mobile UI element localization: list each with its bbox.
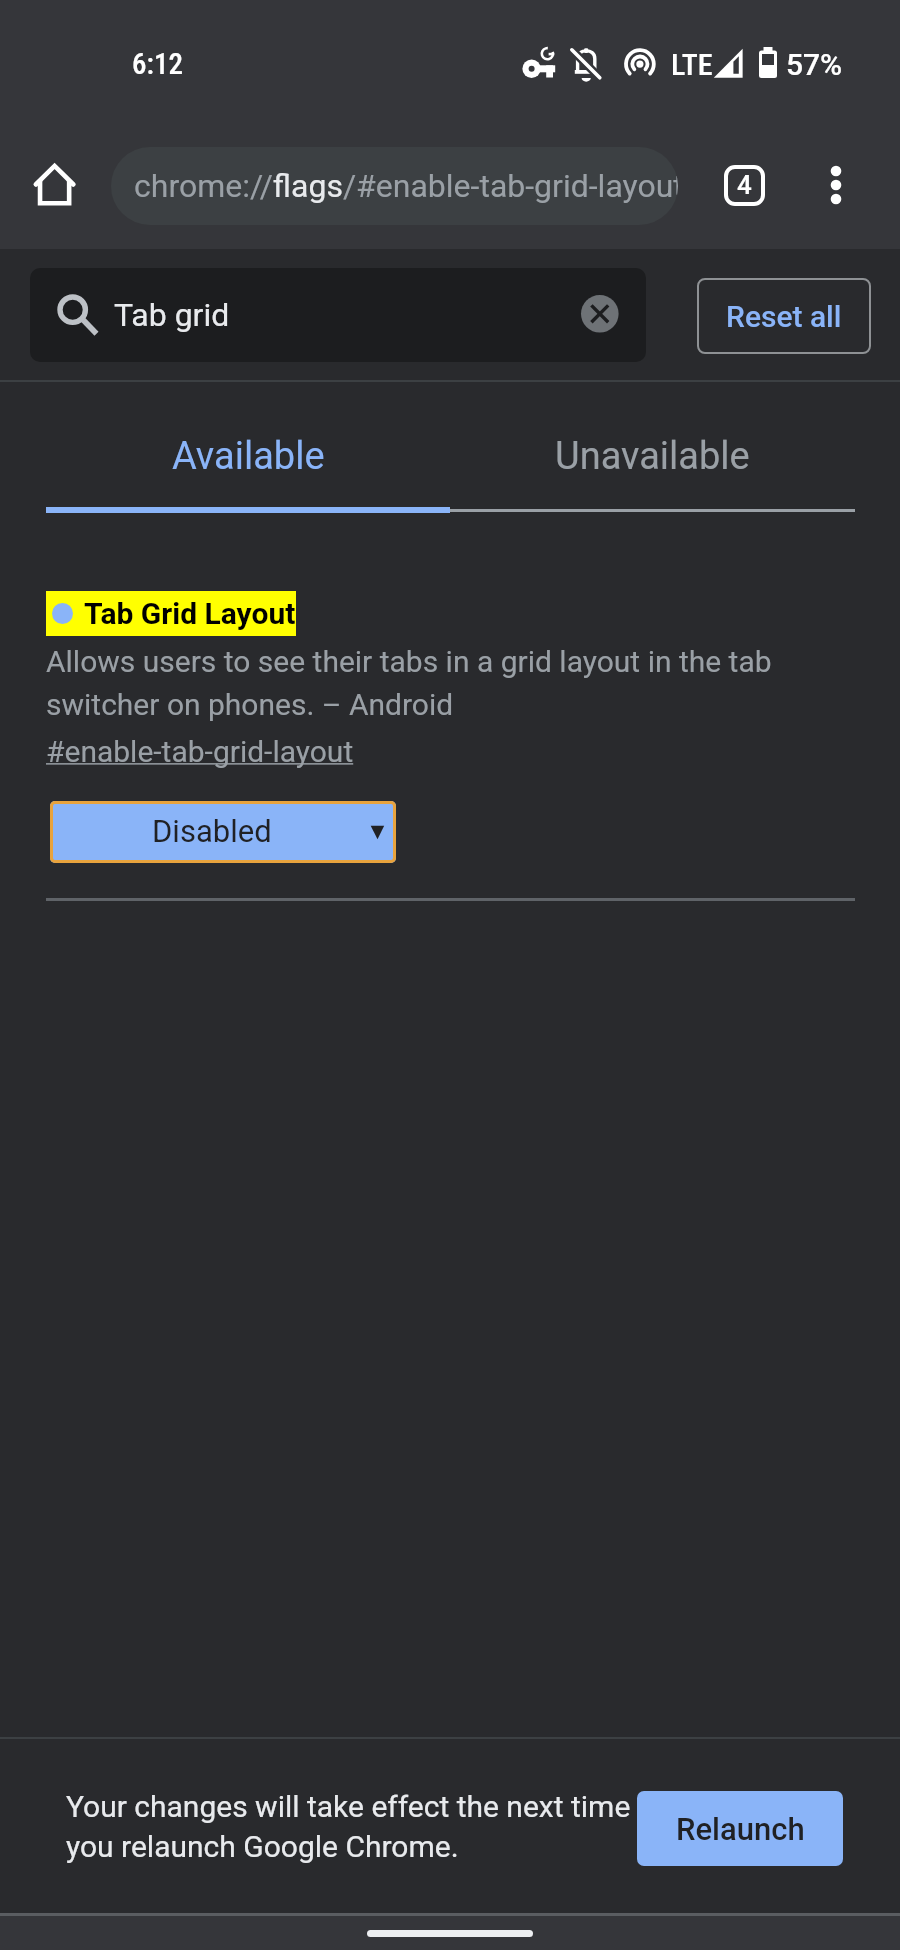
staticText: 57% xyxy=(786,47,843,82)
button[interactable]: More options xyxy=(806,155,866,215)
button[interactable]: Relaunch xyxy=(637,1791,843,1866)
button[interactable]: Disabled xyxy=(50,801,396,863)
staticText: Allows users to see their tabs in a grid… xyxy=(46,644,772,722)
staticText: 4 xyxy=(737,170,752,200)
button[interactable]: Home xyxy=(20,150,89,219)
button[interactable]: Tab grid xyxy=(30,268,646,362)
staticText: chrome://flags/#enable-tab-grid-layout xyxy=(134,167,678,205)
staticText: 6:12 xyxy=(132,47,183,81)
staticText: LTE xyxy=(671,47,713,82)
staticText: Tab grid xyxy=(114,296,230,334)
staticText: Unavailable xyxy=(555,434,750,479)
button[interactable]: Clear search xyxy=(581,295,619,333)
staticText: Reset all xyxy=(726,299,842,334)
button[interactable]: chrome://flags/#enable-tab-grid-layout xyxy=(111,147,678,225)
staticText: Your changes will take effect the next t… xyxy=(66,1789,631,1865)
staticText: Available xyxy=(172,434,325,479)
button[interactable]: Unavailable xyxy=(450,403,855,533)
staticText: Disabled xyxy=(152,813,272,849)
staticText: Tab Grid Layout xyxy=(84,596,296,631)
staticText: Relaunch xyxy=(676,1811,805,1847)
button[interactable]: Available xyxy=(46,403,450,533)
button[interactable]: Reset all xyxy=(697,278,871,354)
button[interactable]: #enable-tab-grid-layout xyxy=(46,734,354,769)
button[interactable]: Tabs xyxy=(714,155,774,215)
